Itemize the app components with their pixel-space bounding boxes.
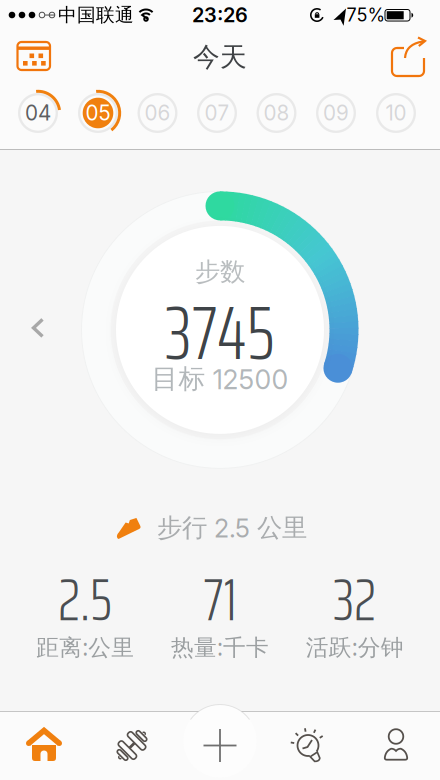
staticText: 中国联通	[58, 3, 134, 26]
staticText: 10	[385, 100, 406, 125]
staticText: 今天	[193, 41, 247, 73]
button[interactable]: Share	[372, 32, 440, 86]
button[interactable]: Day 10	[372, 89, 420, 137]
staticText: 2.5	[58, 554, 112, 646]
button[interactable]: Add	[176, 711, 264, 780]
staticText: 04	[25, 100, 51, 125]
staticText: 06	[144, 100, 170, 125]
button[interactable]: Training	[88, 711, 176, 780]
staticText: 75%	[346, 4, 385, 26]
staticText: 23:26	[192, 3, 248, 27]
staticText: 3745	[165, 274, 275, 392]
button[interactable]: Day 04	[14, 89, 62, 137]
staticText: 步行 2.5 公里	[157, 512, 307, 544]
button[interactable]: Home	[0, 711, 88, 780]
staticText: 05	[85, 100, 110, 125]
button[interactable]: Previous	[30, 317, 46, 338]
staticText: 活跃:分钟	[306, 632, 404, 662]
button[interactable]: Day 09	[312, 89, 360, 137]
button[interactable]: Day 07	[193, 89, 241, 137]
staticText: 目标 12500	[151, 362, 288, 396]
button[interactable]: Day 06	[133, 89, 181, 137]
staticText: 热量:千卡	[171, 632, 269, 662]
staticText: 步数	[195, 256, 245, 287]
button[interactable]: Profile	[352, 711, 440, 780]
staticText: 距离:公里	[36, 632, 134, 662]
staticText: 71	[203, 554, 236, 646]
button[interactable]: Day 05	[74, 89, 122, 137]
staticText: 09	[323, 100, 349, 125]
button[interactable]: Discover	[264, 711, 352, 780]
button[interactable]: Day 08	[252, 89, 300, 137]
staticText: 07	[204, 100, 229, 125]
staticText: 32	[333, 554, 376, 646]
button[interactable]: Calendar	[0, 34, 68, 88]
staticText: 08	[263, 100, 289, 125]
